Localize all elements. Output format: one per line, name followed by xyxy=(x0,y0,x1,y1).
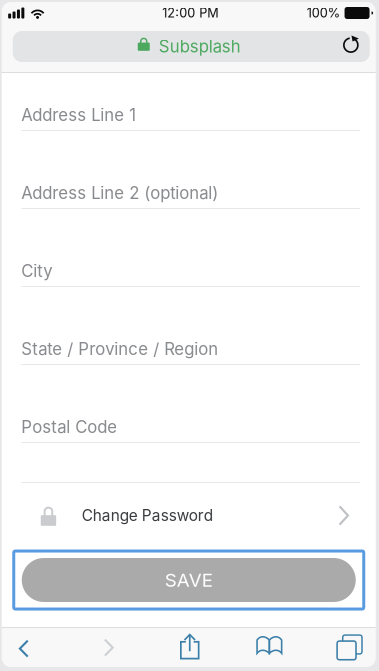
button[interactable]: Forward xyxy=(87,628,131,667)
staticText: Subsplash xyxy=(159,36,241,57)
staticText: Postal Code xyxy=(21,417,117,437)
button[interactable]: Bookmarks xyxy=(244,628,292,667)
staticText: SAVE xyxy=(165,569,213,591)
button[interactable]: Change Password xyxy=(2,483,376,548)
staticText: City xyxy=(21,261,52,281)
staticText: State / Province / Region xyxy=(21,339,218,359)
button[interactable]: SAVE xyxy=(2,548,376,609)
staticText: 12:00 PM xyxy=(162,5,218,21)
button[interactable]: Back xyxy=(2,628,46,667)
button[interactable]: Tabs xyxy=(322,628,368,667)
button[interactable]: Subsplash xyxy=(13,31,370,62)
button[interactable]: Reload page xyxy=(338,31,370,62)
staticText: Address Line 1 xyxy=(21,105,136,125)
button[interactable]: Share xyxy=(166,628,214,667)
staticText: Address Line 2 (optional) xyxy=(21,183,218,203)
staticText: 100% xyxy=(307,5,340,21)
staticText: Change Password xyxy=(82,506,213,525)
